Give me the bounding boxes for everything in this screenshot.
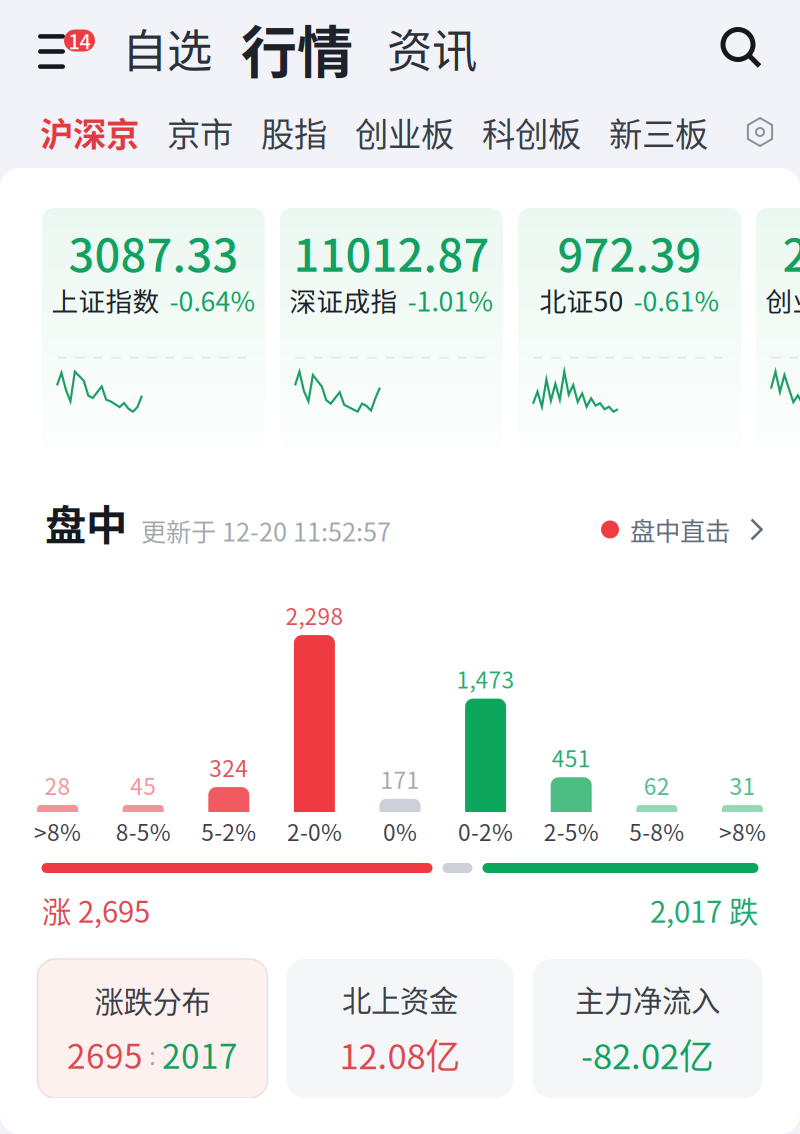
staticText: 2695: [67, 1031, 143, 1078]
button[interactable]: 3087.33: [42, 208, 265, 450]
staticText: 涨跌分布: [94, 979, 210, 1021]
staticText: 主力净流入: [575, 978, 720, 1020]
staticText: 5-8%: [629, 815, 684, 847]
staticText: 沪深京: [40, 108, 139, 156]
staticText: 3087.33: [68, 220, 238, 284]
button[interactable]: Market settings: [745, 117, 775, 147]
staticText: 2165.10: [782, 220, 800, 284]
staticText: 324: [209, 751, 248, 783]
button[interactable]: 行情: [241, 8, 353, 88]
button[interactable]: 自选: [122, 16, 212, 80]
staticText: 资讯: [387, 16, 477, 80]
staticText: >8%: [719, 815, 766, 847]
staticText: 行情: [241, 8, 353, 88]
staticText: 深证成指: [289, 281, 397, 319]
staticText: >8%: [34, 815, 81, 847]
staticText: -82.02亿: [581, 1030, 714, 1079]
staticText: 31: [729, 769, 755, 801]
button[interactable]: 科创板: [482, 108, 581, 156]
staticText: 科创板: [482, 108, 581, 156]
button[interactable]: 沪深京: [40, 108, 139, 156]
staticText: 盘中直击: [630, 512, 730, 547]
staticText: 股指: [261, 108, 327, 156]
staticText: 涨 2,695: [42, 889, 150, 931]
staticText: -0.61%: [633, 281, 719, 319]
staticText: 451: [552, 741, 591, 773]
staticText: 北证50: [539, 281, 623, 319]
staticText: 2017: [162, 1031, 238, 1078]
staticText: :: [149, 1036, 156, 1072]
staticText: 2-5%: [544, 815, 599, 847]
staticText: 2,017 跌: [650, 889, 758, 931]
staticText: 盘中: [45, 493, 127, 551]
button[interactable]: 京市: [167, 108, 233, 156]
staticText: -1.01%: [407, 281, 493, 319]
button[interactable]: 2165.10: [756, 208, 800, 450]
staticText: 0%: [383, 815, 417, 847]
staticText: 62: [644, 769, 670, 801]
staticText: 171: [380, 763, 419, 795]
staticText: -0.64%: [169, 281, 255, 319]
button[interactable]: 主力净流入: [532, 959, 762, 1098]
button[interactable]: 资讯: [387, 16, 477, 80]
staticText: 12.08亿: [339, 1030, 460, 1079]
button[interactable]: 972.39: [518, 208, 741, 450]
staticText: 京市: [167, 108, 233, 156]
button[interactable]: 涨跌分布: [37, 959, 267, 1098]
staticText: 28: [45, 769, 71, 801]
staticText: 0-2%: [458, 815, 513, 847]
staticText: 2-0%: [287, 815, 342, 847]
staticText: 2,298: [285, 599, 343, 631]
staticText: 创业板指: [765, 281, 800, 319]
staticText: 新三板: [609, 108, 708, 156]
staticText: 创业板: [355, 108, 454, 156]
staticText: 北上资金: [342, 978, 458, 1020]
button[interactable]: 新三板: [609, 108, 708, 156]
staticText: 8-5%: [116, 815, 171, 847]
button[interactable]: Search: [721, 27, 762, 68]
button[interactable]: 北上资金: [286, 959, 513, 1098]
staticText: 11012.87: [293, 220, 489, 284]
button[interactable]: 盘中直击: [601, 512, 763, 551]
staticText: 5-2%: [201, 815, 256, 847]
staticText: 972.39: [557, 220, 701, 284]
staticText: 1,473: [457, 663, 515, 695]
staticText: 45: [130, 769, 156, 801]
button[interactable]: Menu: [38, 29, 95, 66]
button[interactable]: 股指: [261, 108, 327, 156]
staticText: 上证指数: [51, 281, 159, 319]
staticText: 更新于 12-20 11:52:57: [141, 513, 391, 548]
staticText: 14: [68, 26, 90, 55]
button[interactable]: 11012.87: [280, 208, 503, 450]
button[interactable]: 创业板: [355, 108, 454, 156]
staticText: 自选: [122, 16, 212, 80]
